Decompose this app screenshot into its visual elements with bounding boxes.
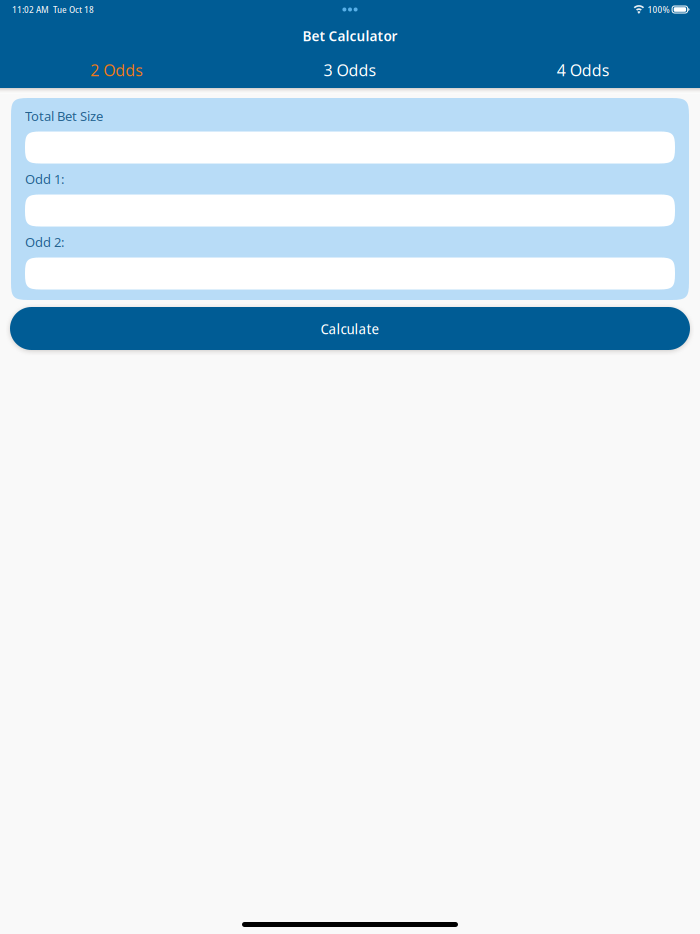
staticText: 3 Odds: [323, 59, 376, 81]
button[interactable]: Text field: [25, 257, 675, 289]
button[interactable]: Text field: [25, 194, 675, 226]
button[interactable]: Text field: [25, 131, 675, 163]
staticText: Bet Calculator: [302, 25, 397, 45]
staticText: 11:02 AM Tue Oct 18: [12, 3, 94, 16]
button[interactable]: Calculate: [10, 307, 690, 350]
button[interactable]: 2 Odds: [0, 52, 233, 88]
staticText: Calculate: [320, 318, 379, 338]
staticText: Odd 1:: [25, 170, 64, 188]
staticText: Total Bet Size: [25, 107, 103, 125]
staticText: 100%: [648, 3, 670, 16]
staticText: 2 Odds: [90, 59, 143, 81]
staticText: Odd 2:: [25, 233, 64, 251]
staticText: 4 Odds: [557, 59, 610, 81]
button[interactable]: 4 Odds: [467, 52, 700, 88]
button[interactable]: 3 Odds: [233, 52, 467, 88]
